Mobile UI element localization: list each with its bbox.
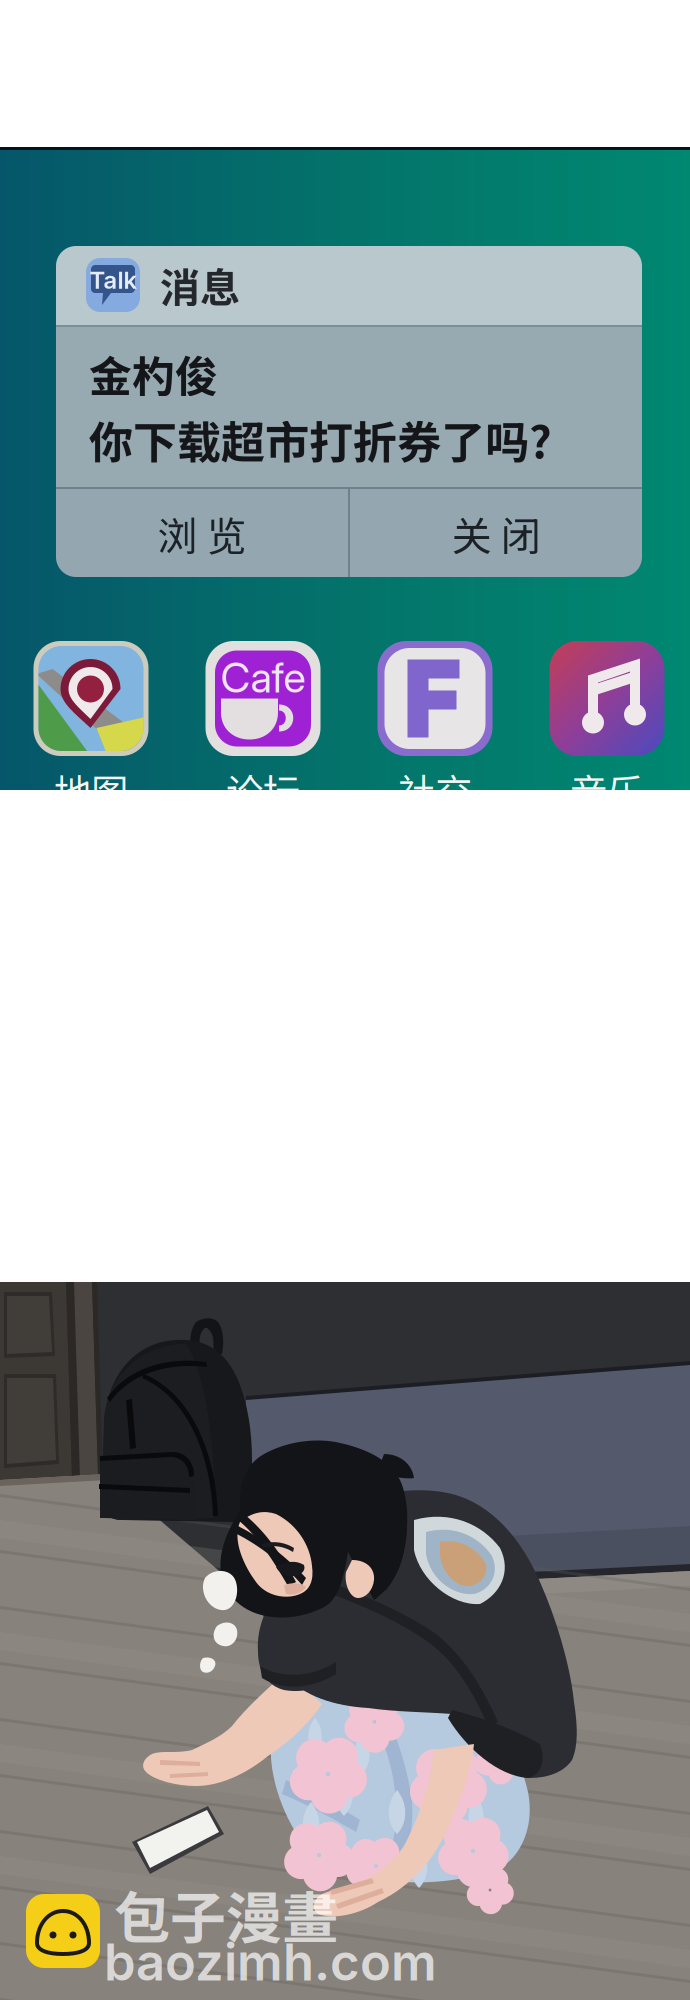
staticText: 音乐 — [570, 763, 644, 817]
button[interactable]: 关 闭 — [350, 489, 642, 578]
staticText: 消息 — [160, 256, 240, 314]
staticText: 金杓俊 — [89, 343, 218, 405]
staticText: 你下载超市打折券了吗? — [89, 407, 552, 471]
button[interactable]: Cafe — [177, 641, 349, 817]
staticText: baozimh.com — [104, 1931, 437, 1993]
button[interactable]: 音乐 — [521, 641, 690, 817]
staticText: 浏 览 — [157, 504, 246, 562]
button[interactable]: 社交 — [349, 641, 521, 817]
staticText: Talk — [89, 265, 136, 294]
staticText: 关 闭 — [451, 504, 540, 562]
staticText: 包子漫畫 — [114, 1873, 338, 1955]
button[interactable]: 地图 — [5, 641, 177, 817]
staticText: 社交 — [398, 763, 472, 817]
staticText: Cafe — [220, 652, 305, 702]
staticText: 地图 — [54, 763, 128, 817]
button[interactable]: 浏 览 — [56, 489, 348, 578]
staticText: 论坛 — [226, 763, 300, 817]
